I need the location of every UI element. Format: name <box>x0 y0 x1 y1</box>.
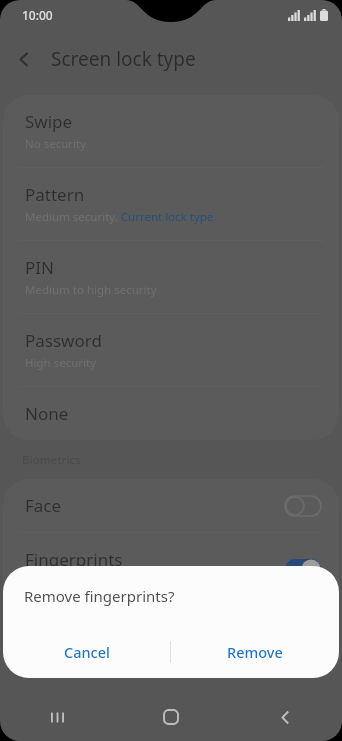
staticText: PIN <box>25 256 54 279</box>
button[interactable]: Swipe <box>3 95 339 167</box>
staticText: Face <box>25 494 62 517</box>
button[interactable]: Back <box>0 35 48 83</box>
button[interactable]: Pattern <box>3 168 339 240</box>
button[interactable]: Back <box>228 693 342 741</box>
staticText: Medium to high security <box>25 282 157 298</box>
button[interactable]: Remove <box>171 626 339 678</box>
staticText: No security <box>25 136 87 152</box>
staticText: High security <box>25 355 97 371</box>
staticText: None <box>25 402 69 425</box>
staticText: Remove <box>227 642 283 662</box>
staticText: Swipe <box>25 110 73 133</box>
button[interactable]: Cancel <box>3 626 170 678</box>
staticText: Password <box>25 329 102 352</box>
staticText: Screen lock type <box>51 46 196 72</box>
button[interactable]: Password <box>3 314 339 386</box>
staticText: Pattern <box>25 183 85 206</box>
staticText: Medium security, Current lock type <box>25 209 214 225</box>
button[interactable]: Toggle on <box>285 559 321 579</box>
staticText: Cancel <box>64 642 110 662</box>
button[interactable]: Fingerprints <box>3 533 339 605</box>
button[interactable]: Face <box>3 479 339 532</box>
button[interactable]: PIN <box>3 241 339 313</box>
staticText: 10:00 <box>22 7 53 23</box>
button[interactable]: Recents <box>0 693 114 741</box>
button[interactable]: Toggle off <box>285 496 321 516</box>
staticText: Remove fingerprints? <box>24 586 175 606</box>
staticText: Fingerprints <box>25 548 123 571</box>
staticText: Biometrics <box>22 452 81 468</box>
button[interactable]: Home <box>114 693 228 741</box>
button[interactable]: None <box>3 387 339 440</box>
